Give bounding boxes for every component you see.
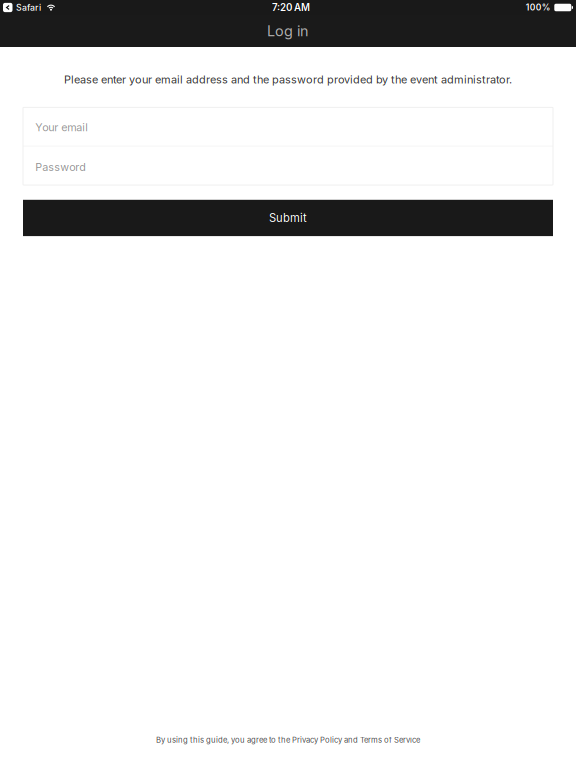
staticText: 7:20 AM xyxy=(272,2,310,13)
staticText: Password xyxy=(35,161,86,174)
button[interactable]: Terms of Service xyxy=(360,735,420,745)
staticText: Please enter your email address and the … xyxy=(64,73,512,86)
staticText: 100% xyxy=(526,2,551,13)
button[interactable]: Back to Safari xyxy=(3,2,41,13)
button[interactable]: Submit xyxy=(23,200,553,236)
staticText: Terms of Service xyxy=(360,735,420,745)
staticText: Your email xyxy=(35,121,88,134)
staticText: Submit xyxy=(269,211,307,225)
button[interactable]: Privacy Policy xyxy=(292,735,342,745)
button[interactable]: Password xyxy=(23,147,553,185)
staticText: and xyxy=(342,735,360,745)
staticText: Log in xyxy=(267,22,309,40)
button[interactable]: Your email xyxy=(23,107,553,146)
staticText: Safari xyxy=(16,2,41,13)
staticText: By using this guide, you agree to the xyxy=(156,735,292,745)
staticText: Privacy Policy xyxy=(292,735,342,745)
